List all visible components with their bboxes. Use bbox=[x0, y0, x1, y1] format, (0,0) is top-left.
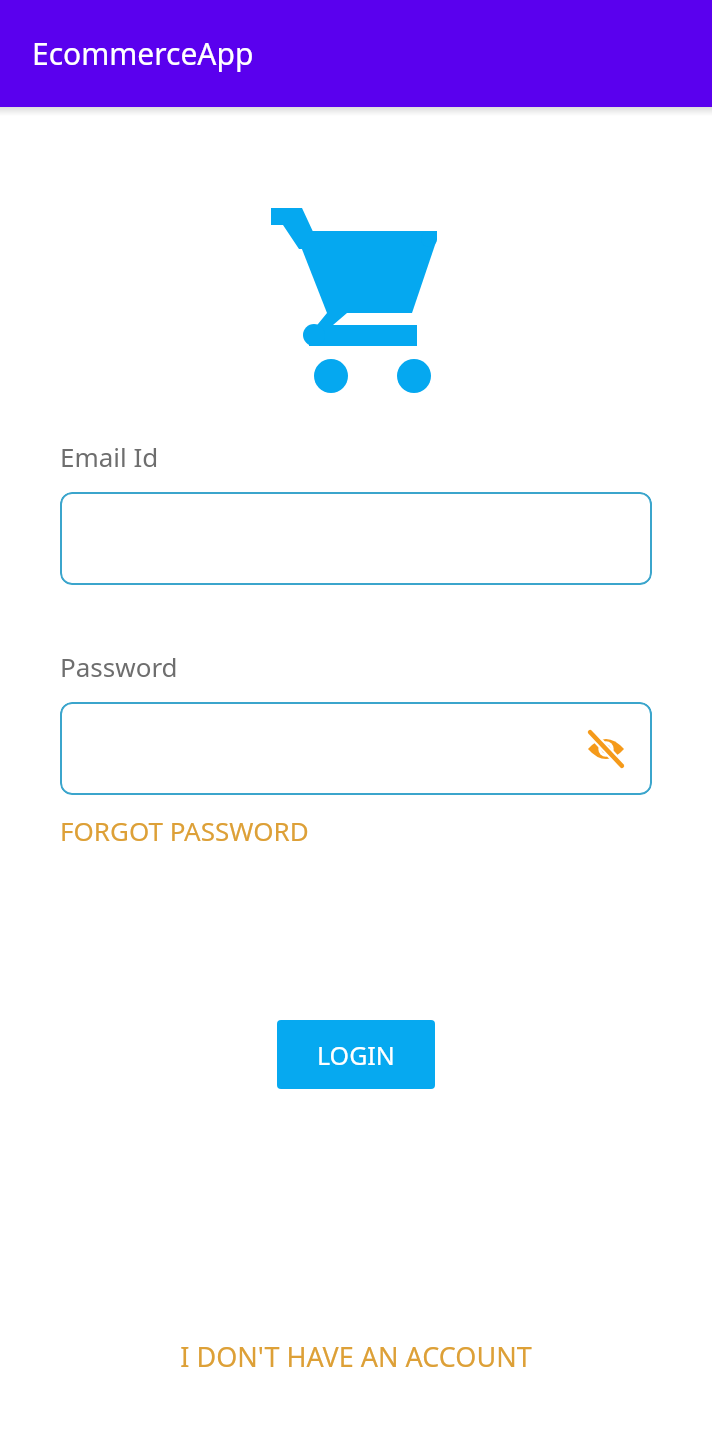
staticText: Email Id bbox=[60, 439, 159, 474]
button[interactable]: I DON'T HAVE AN ACCOUNT bbox=[160, 1330, 552, 1383]
button[interactable]: Show password bbox=[582, 725, 630, 773]
button[interactable]: Show password bbox=[60, 702, 652, 795]
staticText: Password bbox=[60, 649, 178, 684]
staticText: I DON'T HAVE AN ACCOUNT bbox=[180, 1338, 532, 1375]
staticText: FORGOT PASSWORD bbox=[60, 813, 309, 848]
button[interactable]: LOGIN bbox=[277, 1020, 435, 1089]
staticText: EcommerceApp bbox=[32, 33, 254, 74]
staticText: LOGIN bbox=[317, 1038, 395, 1072]
button[interactable]: FORGOT PASSWORD bbox=[60, 809, 309, 852]
button[interactable] bbox=[60, 492, 652, 585]
